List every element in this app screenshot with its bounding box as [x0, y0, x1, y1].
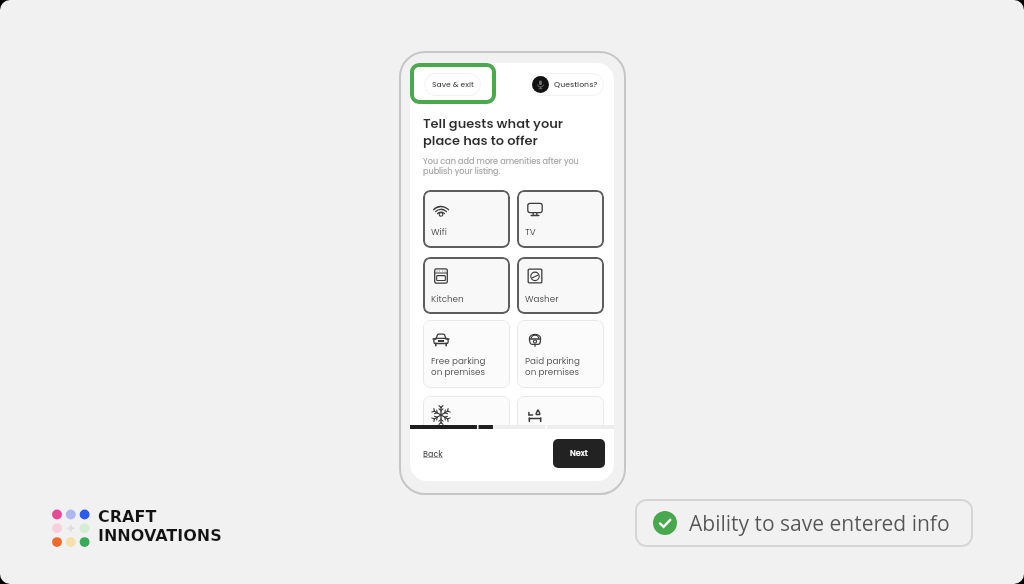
staticText: Washer	[525, 293, 559, 305]
button[interactable]: Next	[553, 439, 605, 468]
button[interactable]: Wifi	[423, 190, 510, 248]
button[interactable]: Paid parking on premises	[517, 320, 604, 388]
staticText: Free parking on premises	[431, 355, 486, 378]
staticText: Questions?	[554, 79, 598, 90]
button[interactable]: Questions?	[529, 73, 604, 96]
button[interactable]: Success	[635, 499, 973, 547]
staticText: Save & exit	[432, 79, 474, 90]
staticText: Tell guests what your place has to offer	[423, 114, 564, 149]
staticText: Next	[570, 448, 588, 459]
staticText: You can add more amenities after you pub…	[423, 155, 579, 177]
staticText: Paid parking on premises	[525, 355, 580, 378]
staticText: Wifi	[431, 226, 447, 238]
staticText: TV	[525, 226, 536, 238]
button[interactable]: Save & exit	[424, 73, 481, 96]
button[interactable]: TV	[517, 190, 604, 248]
staticText: INNOVATIONS	[98, 526, 222, 545]
staticText: Ability to save entered info	[689, 509, 950, 538]
staticText: Back	[423, 449, 443, 460]
button[interactable]: Free parking on premises	[423, 320, 510, 388]
staticText: Kitchen	[431, 293, 464, 305]
button[interactable]: Back	[420, 446, 446, 463]
button[interactable]: Air conditioning	[423, 396, 510, 426]
other: Success	[653, 511, 677, 535]
button[interactable]: Kitchen	[423, 257, 510, 314]
button[interactable]: Dedicated workspace	[517, 396, 604, 426]
staticText: CRAFT	[98, 507, 157, 526]
button[interactable]: Washer	[517, 257, 604, 314]
